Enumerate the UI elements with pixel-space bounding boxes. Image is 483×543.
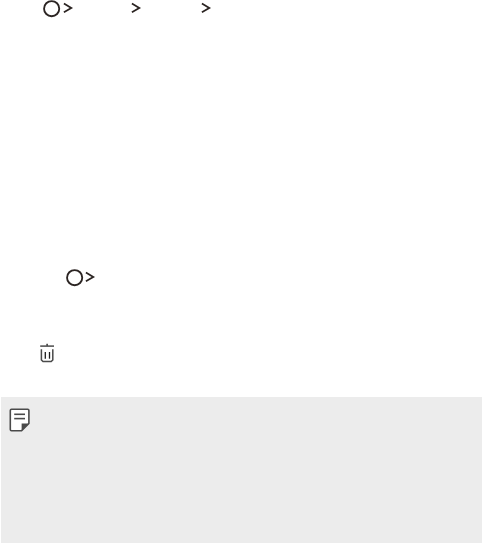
button[interactable]: Home — [43, 0, 61, 18]
button[interactable]: Note card — [1, 397, 482, 543]
button[interactable]: Delete — [39, 343, 55, 363]
button[interactable]: Home — [66, 269, 84, 287]
